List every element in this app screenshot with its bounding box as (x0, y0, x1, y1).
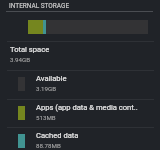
staticText: 3.19GB (36, 85, 57, 92)
staticText: 88.78MB (36, 142, 61, 149)
staticText: 3.94GB (10, 56, 31, 63)
staticText: Apps (app data & media cont.. (36, 103, 138, 112)
staticText: Cached data (36, 131, 79, 140)
staticText: Available (36, 74, 67, 83)
staticText: INTERNAL STORAGE (9, 2, 70, 10)
staticText: Total space (10, 45, 50, 54)
button[interactable]: Storage usage bar (28, 20, 148, 34)
button[interactable]: Cached data (0, 127, 160, 150)
button[interactable]: Available (0, 70, 160, 99)
button[interactable]: Total space (0, 41, 160, 70)
button[interactable]: Apps (app data & media cont.. (0, 99, 160, 127)
staticText: 513MB (36, 114, 56, 121)
